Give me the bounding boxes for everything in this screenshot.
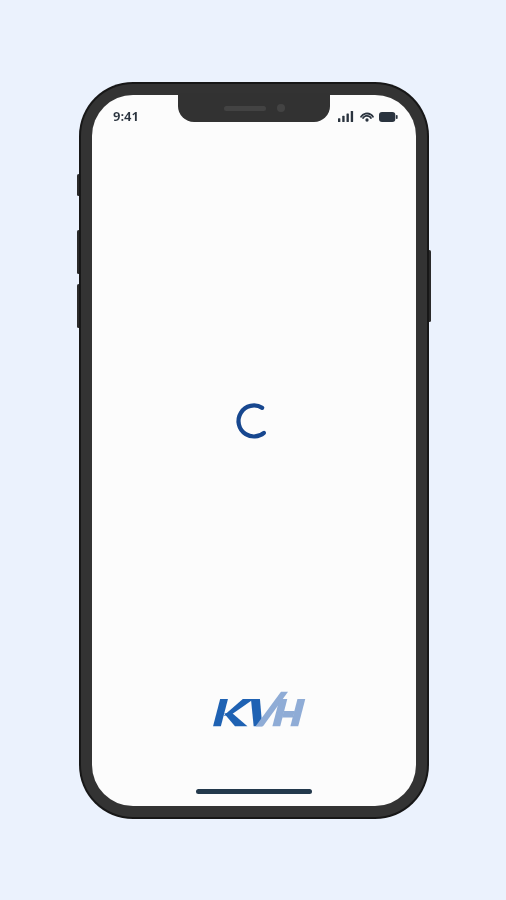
other: Silent switch <box>77 174 80 196</box>
other: Power <box>428 250 431 322</box>
staticText: 9:41 <box>113 107 139 125</box>
other: Volume down <box>77 284 80 328</box>
other: Loading <box>234 401 274 441</box>
other: KVH logo <box>208 691 300 731</box>
other: Volume up <box>77 230 80 274</box>
